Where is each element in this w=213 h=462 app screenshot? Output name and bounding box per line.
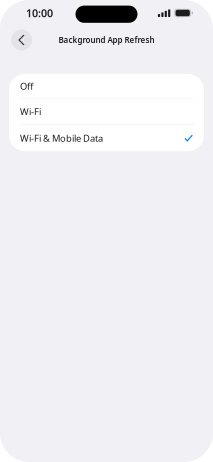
staticText: Wi-Fi & Mobile Data [20, 132, 103, 144]
button[interactable]: Off [9, 74, 204, 98]
button[interactable]: Wi-Fi & Mobile Data [9, 125, 204, 151]
staticText: Off [20, 80, 33, 92]
staticText: Wi-Fi [20, 105, 41, 118]
staticText: 10:00 [26, 6, 53, 20]
button[interactable]: Wi-Fi [9, 99, 204, 124]
button[interactable]: Back [11, 29, 32, 50]
staticText: Background App Refresh [58, 35, 154, 45]
